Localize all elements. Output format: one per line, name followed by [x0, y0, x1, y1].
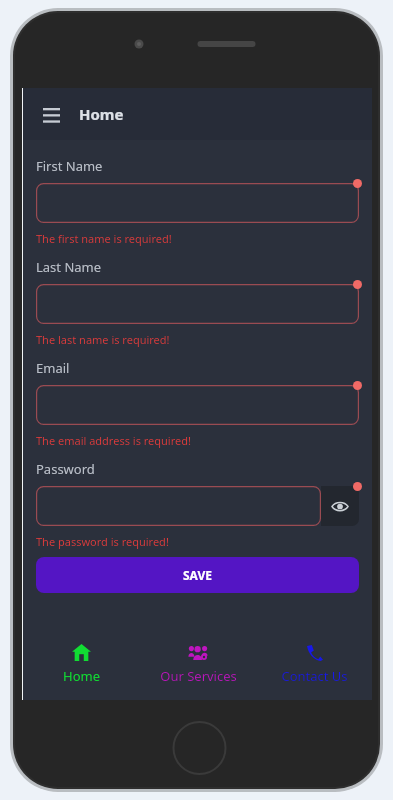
button[interactable]: Our Services	[143, 639, 253, 687]
button[interactable]	[36, 284, 359, 324]
staticText: Home	[63, 667, 100, 685]
staticText: The password is required!	[36, 534, 169, 549]
staticText: SAVE	[183, 567, 212, 583]
button[interactable]	[36, 183, 359, 223]
button[interactable]	[36, 385, 359, 425]
staticText: Password	[36, 460, 95, 478]
staticText: Our Services	[160, 667, 237, 685]
staticText: Home	[79, 104, 124, 124]
staticText: The first name is required!	[36, 231, 172, 246]
staticText: The last name is required!	[36, 332, 170, 347]
staticText: First Name	[36, 157, 103, 175]
staticText: Last Name	[36, 258, 102, 276]
button[interactable]: Show password	[321, 486, 359, 526]
staticText: Contact Us	[281, 667, 348, 685]
button[interactable]: SAVE	[36, 557, 359, 593]
button[interactable]	[36, 486, 321, 526]
staticText: Email	[36, 359, 70, 377]
button[interactable]: Contact Us	[259, 639, 369, 687]
button[interactable]: Home	[26, 639, 136, 687]
button[interactable]: Open navigation menu	[33, 96, 69, 132]
staticText: The email address is required!	[36, 433, 191, 448]
